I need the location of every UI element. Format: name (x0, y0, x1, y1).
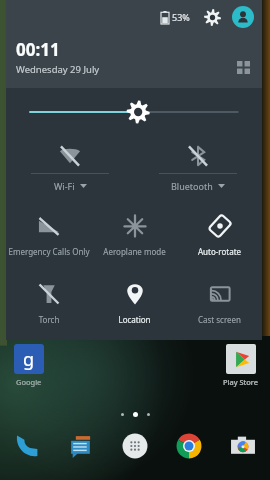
staticText: Emergency Calls Only (7, 246, 91, 257)
button[interactable]: Emergency Calls Only (6, 204, 92, 257)
button[interactable]: Location (92, 272, 177, 325)
button[interactable]: Auto-rotate (177, 204, 262, 257)
button[interactable]: Cast screen (177, 272, 262, 325)
button[interactable]: Google (14, 344, 44, 374)
staticText: g (23, 347, 35, 372)
button[interactable]: Wi-Fi (6, 136, 134, 192)
staticText: 53% (172, 11, 190, 23)
button[interactable]: Expand quick settings (234, 58, 252, 76)
button[interactable]: Bluetooth (134, 136, 262, 192)
button[interactable]: Camera (226, 429, 260, 463)
button[interactable]: User (232, 6, 254, 28)
staticText: Wi-Fi (54, 180, 75, 192)
staticText: Aeroplane mode (93, 246, 176, 257)
staticText: Cast screen (178, 314, 261, 325)
button[interactable]: Settings (202, 7, 222, 27)
staticText: Play Store (223, 377, 258, 387)
button[interactable]: Torch (6, 272, 92, 325)
staticText: Bluetooth (171, 180, 213, 192)
button[interactable]: Phone (10, 429, 44, 463)
staticText: 00:11 (16, 38, 60, 61)
button[interactable]: Play Store (226, 344, 256, 374)
staticText: Wednesday 29 July (16, 63, 100, 76)
staticText: Google (16, 377, 42, 387)
staticText: Location (93, 314, 176, 325)
button[interactable]: Chrome (172, 429, 206, 463)
staticText: Torch (7, 314, 91, 325)
button[interactable]: Aeroplane mode (92, 204, 177, 257)
button[interactable] (30, 95, 238, 129)
button[interactable]: Apps (118, 429, 152, 463)
staticText: Auto-rotate (178, 246, 261, 257)
button[interactable]: Messaging (64, 429, 98, 463)
